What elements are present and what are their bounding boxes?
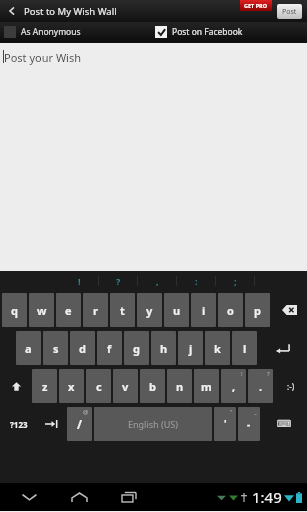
staticText: Post [282,7,297,17]
button[interactable]: ; [216,271,254,291]
staticText: n [176,379,184,394]
button[interactable]: h [151,331,176,365]
staticText: Post on Facebook [172,26,243,38]
staticText: f [107,341,112,356]
staticText: r [93,303,98,318]
button[interactable]: p [245,293,270,327]
button[interactable]: ' [214,407,236,441]
button[interactable]: :-) [274,368,307,404]
staticText: / [77,416,82,432]
staticText: i [202,303,206,318]
button[interactable]: English (US) [94,407,212,441]
staticText: q [11,303,18,318]
staticText: 1:49 [252,487,282,507]
button[interactable]: / [67,407,92,441]
staticText: k [214,341,221,356]
staticText: y [146,303,153,318]
button[interactable]: m [194,369,219,403]
staticText: @ [83,408,89,416]
button[interactable]: ? [99,271,137,291]
button[interactable]: k [205,331,230,365]
button[interactable]: a [16,331,41,365]
button[interactable]: d [70,331,95,365]
staticText: c [96,379,102,394]
staticText: Post to My Wish Wall [24,5,117,18]
button[interactable]: , [221,369,246,403]
staticText: , [156,275,159,287]
staticText: As Anonymous [21,26,81,38]
staticText: . [259,379,263,394]
button[interactable]: z [32,369,57,403]
staticText: ! [241,370,243,378]
button[interactable]: ?123 [2,407,35,441]
staticText: j [189,341,193,356]
button[interactable]: , [138,271,176,291]
button[interactable]: Keyboard settings [261,406,307,442]
staticText: ? [116,275,121,287]
staticText: _ [254,408,257,416]
staticText: : [195,275,198,287]
button[interactable]: e [56,293,81,327]
button[interactable]: GET PRO [240,0,272,11]
button[interactable]: c [86,369,111,403]
button[interactable]: ! [60,271,98,291]
staticText: p [254,303,261,318]
button[interactable]: Recent apps [112,484,146,510]
button[interactable]: t [110,293,135,327]
button[interactable]: o [218,293,243,327]
button[interactable]: g [124,331,149,365]
staticText: ? [267,370,270,378]
button[interactable]: Backspace [271,292,307,328]
button[interactable]: r [83,293,108,327]
staticText: ! [78,275,81,287]
staticText: ⌨ [277,418,292,430]
button[interactable]: i [191,293,216,327]
staticText: b [149,379,156,394]
staticText: a [25,341,32,356]
staticText: g [133,341,140,356]
button[interactable]: Home [62,484,96,510]
button[interactable]: Enter [258,330,307,366]
staticText: h [160,341,168,356]
staticText: s [53,341,59,356]
staticText: t [120,303,125,318]
button[interactable]: l [232,331,257,365]
button[interactable]: Post your Wish [0,43,307,271]
staticText: Post your Wish [4,50,82,65]
staticText: - [247,417,251,431]
staticText: ; [234,275,237,287]
button[interactable]: - [238,407,260,441]
button[interactable]: q [2,293,27,327]
button[interactable]: Post [277,4,302,19]
staticText: GET PRO [244,2,268,9]
staticText: ?123 [10,419,28,430]
staticText: v [122,379,129,394]
button[interactable]: w [29,293,54,327]
staticText: u [173,303,181,318]
button[interactable]: b [140,369,165,403]
button[interactable]: Shift [1,368,31,404]
button[interactable]: Back [5,4,19,18]
staticText: :-) [287,381,295,392]
button[interactable]: : [177,271,215,291]
button[interactable]: x [59,369,84,403]
button[interactable]: j [178,331,203,365]
button[interactable]: n [167,369,192,403]
staticText: x [68,379,75,394]
button[interactable]: u [164,293,189,327]
button[interactable]: . [248,369,273,403]
button[interactable]: Tab [36,406,66,442]
staticText: , [232,379,236,394]
button[interactable]: Hide keyboard [12,484,46,510]
staticText: w [37,303,47,318]
staticText: z [42,379,48,394]
button[interactable]: As Anonymous [4,22,81,42]
staticText: d [79,341,86,356]
button[interactable]: s [43,331,68,365]
staticText: " [230,408,233,416]
button[interactable]: y [137,293,162,327]
staticText: English (US) [128,418,178,430]
button[interactable]: f [97,331,122,365]
button[interactable]: Post on Facebook [155,22,243,42]
button[interactable]: v [113,369,138,403]
